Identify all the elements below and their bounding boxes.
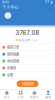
staticText: 个人中心 [2, 4, 18, 10]
button[interactable]: 地址管理 [0, 58, 55, 65]
button[interactable]: Profile [0, 10, 55, 21]
staticText: 我的 [45, 95, 51, 99]
button[interactable]: 分类 [14, 89, 28, 100]
button[interactable]: 我的订单 [0, 44, 55, 51]
staticText: 优惠券 [7, 66, 16, 70]
staticText: 首页 [4, 95, 10, 99]
staticText: 设置 [7, 73, 13, 77]
staticText: LTE [45, 0, 50, 4]
button[interactable]: 优惠券 [0, 65, 55, 72]
button[interactable]: 我的收藏 [0, 51, 55, 58]
staticText: 购物车 [30, 95, 39, 99]
staticText: 立即充值 [21, 81, 33, 86]
button[interactable]: 设置 [0, 72, 55, 78]
staticText: 我的收藏 [7, 52, 19, 56]
staticText: 我的订单 [7, 45, 19, 49]
button[interactable]: 我的 [41, 89, 55, 100]
staticText: 9:41 [2, 0, 8, 4]
button[interactable]: 立即充值 [16, 80, 38, 87]
staticText: 地址管理 [7, 59, 19, 63]
button[interactable]: 购物车 [27, 89, 41, 100]
button[interactable]: 首页 [0, 89, 14, 100]
staticText: 3767.08 [15, 30, 39, 36]
staticText: 我的余额（元） [19, 38, 40, 42]
staticText: 分类 [18, 95, 24, 99]
staticText: ▮ [50, 0, 53, 4]
